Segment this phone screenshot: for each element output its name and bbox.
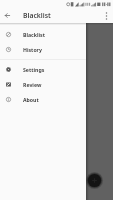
button[interactable]: More options [99,9,113,23]
button[interactable]: Settings [0,62,86,77]
button[interactable]: Back [0,8,15,23]
button[interactable]: About [0,92,86,107]
staticText: About [23,96,39,103]
button[interactable]: Review [0,77,86,92]
staticText: History [23,46,42,53]
staticText: Review [23,81,42,88]
button[interactable]: Add [86,172,103,189]
button[interactable]: Blacklist [0,27,86,42]
staticText: Blacklist [23,31,45,38]
button[interactable]: History [0,42,86,57]
staticText: Settings [23,66,45,73]
staticText: Blacklist [23,11,51,20]
